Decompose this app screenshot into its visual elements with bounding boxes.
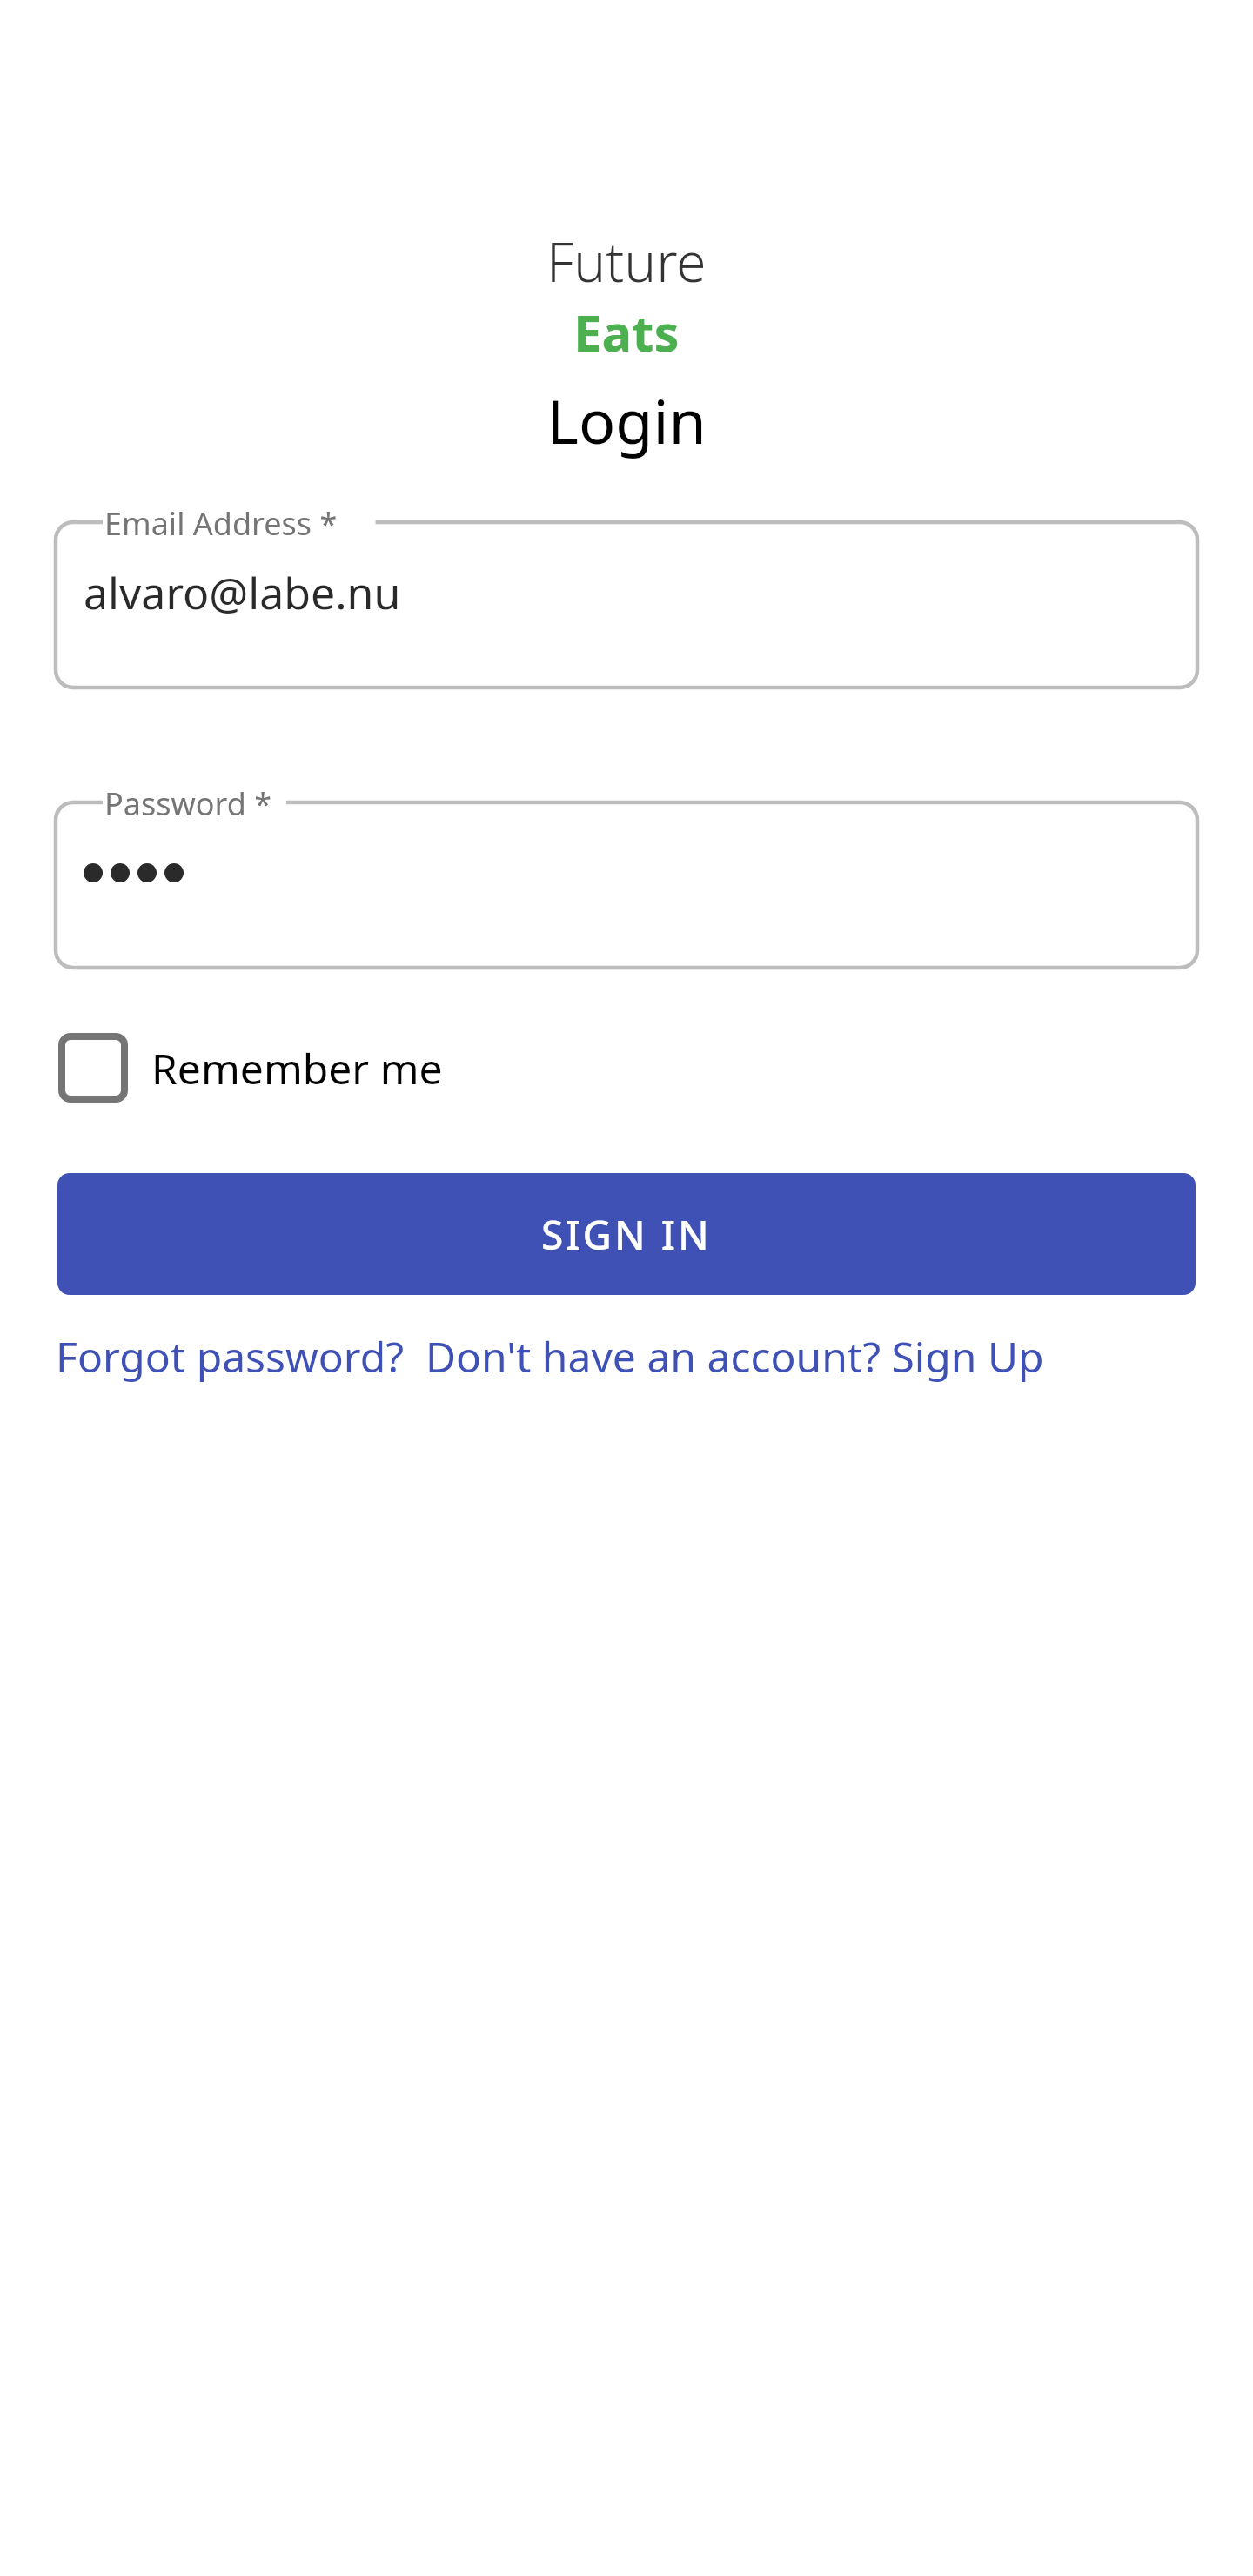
staticText: Login [0,379,1253,461]
other: Remember me checkbox [57,1032,129,1104]
staticText: SIGN IN [541,1207,712,1262]
staticText: alvaro@labe.nu [84,563,401,622]
button[interactable]: Forgot password? [56,1328,405,1385]
button[interactable]: Don't have an account? Sign Up [425,1328,1044,1385]
staticText: Future [546,225,707,298]
button[interactable]: Remember me checkbox [30,1018,478,1117]
staticText: Eats [573,298,680,366]
button[interactable]: SIGN IN [57,1173,1196,1295]
staticText: Password * [104,782,272,825]
button[interactable]: Email Address * [56,498,1197,688]
staticText: Email Address * [104,502,338,545]
button[interactable]: Password * [56,778,1197,968]
staticText: Remember me [151,1040,443,1097]
